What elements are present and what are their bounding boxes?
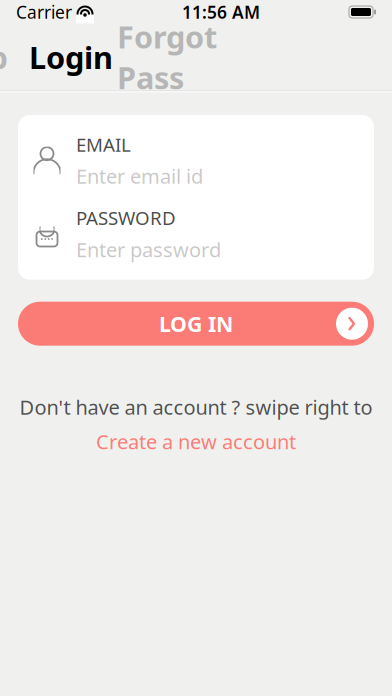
staticText: Enter email id [76,163,203,189]
button[interactable]: Forgot Pass [117,16,267,98]
staticText: Don't have an account ? swipe right to [19,394,372,420]
button[interactable]: Login [25,37,117,77]
staticText: LOG IN [159,309,233,338]
button[interactable]: LOG IN [18,302,374,346]
staticText: 11:56 AM [182,0,260,23]
staticText: Create a new account [96,428,296,455]
staticText: Enter password [76,236,221,263]
staticText: PASSWORD [76,205,176,230]
button[interactable]: Create a new account [96,428,296,455]
staticText: Login [29,37,113,77]
staticText: EMAIL [76,132,131,157]
staticText: Sign Up [0,37,7,77]
staticText: Carrier [16,0,72,23]
button[interactable]: Sign Up [0,37,25,77]
staticText: Forgot Pass [117,16,217,98]
